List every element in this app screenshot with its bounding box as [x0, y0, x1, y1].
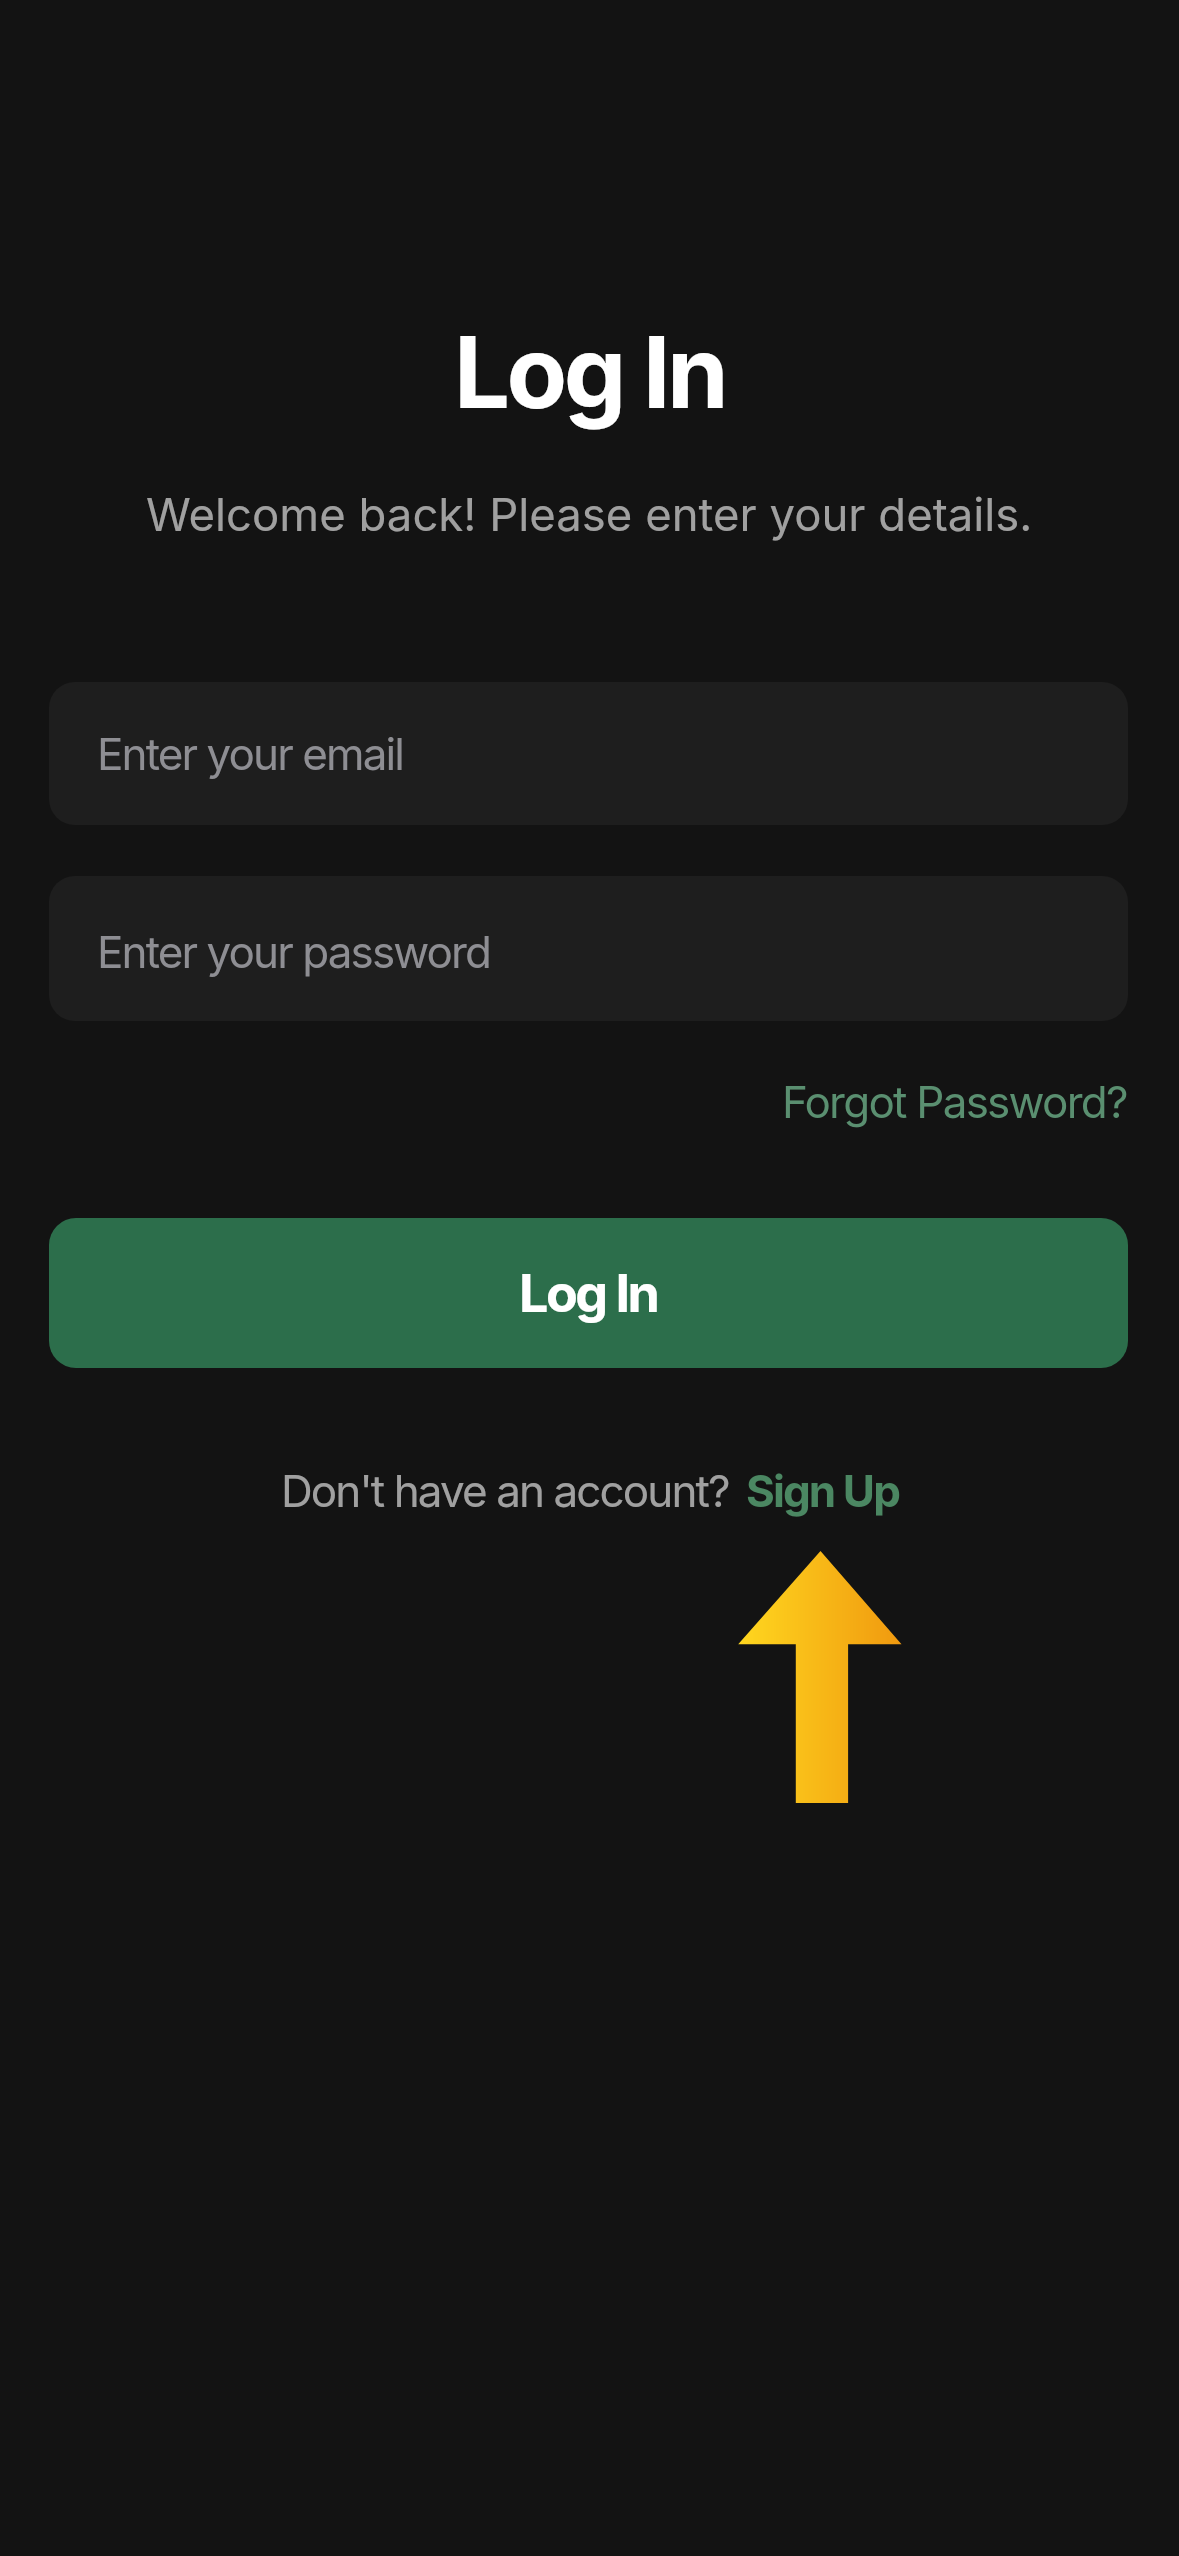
- staticText: Welcome back! Please enter your details.: [146, 487, 1033, 542]
- staticText: Don't have an account?: [281, 1464, 740, 1517]
- button[interactable]: Enter your password: [49, 876, 1128, 1021]
- button[interactable]: Sign Up: [746, 1464, 899, 1517]
- staticText: Forgot Password?: [782, 1075, 1127, 1128]
- staticText: Enter your email: [97, 727, 404, 780]
- staticText: Log In: [454, 312, 726, 432]
- staticText: Enter your password: [97, 925, 491, 978]
- staticText: Sign Up: [746, 1464, 899, 1517]
- button[interactable]: Enter your email: [49, 682, 1128, 825]
- button[interactable]: Forgot Password?: [782, 1075, 1127, 1128]
- staticText: Log In: [519, 1262, 658, 1325]
- button[interactable]: Log In: [49, 1218, 1128, 1368]
